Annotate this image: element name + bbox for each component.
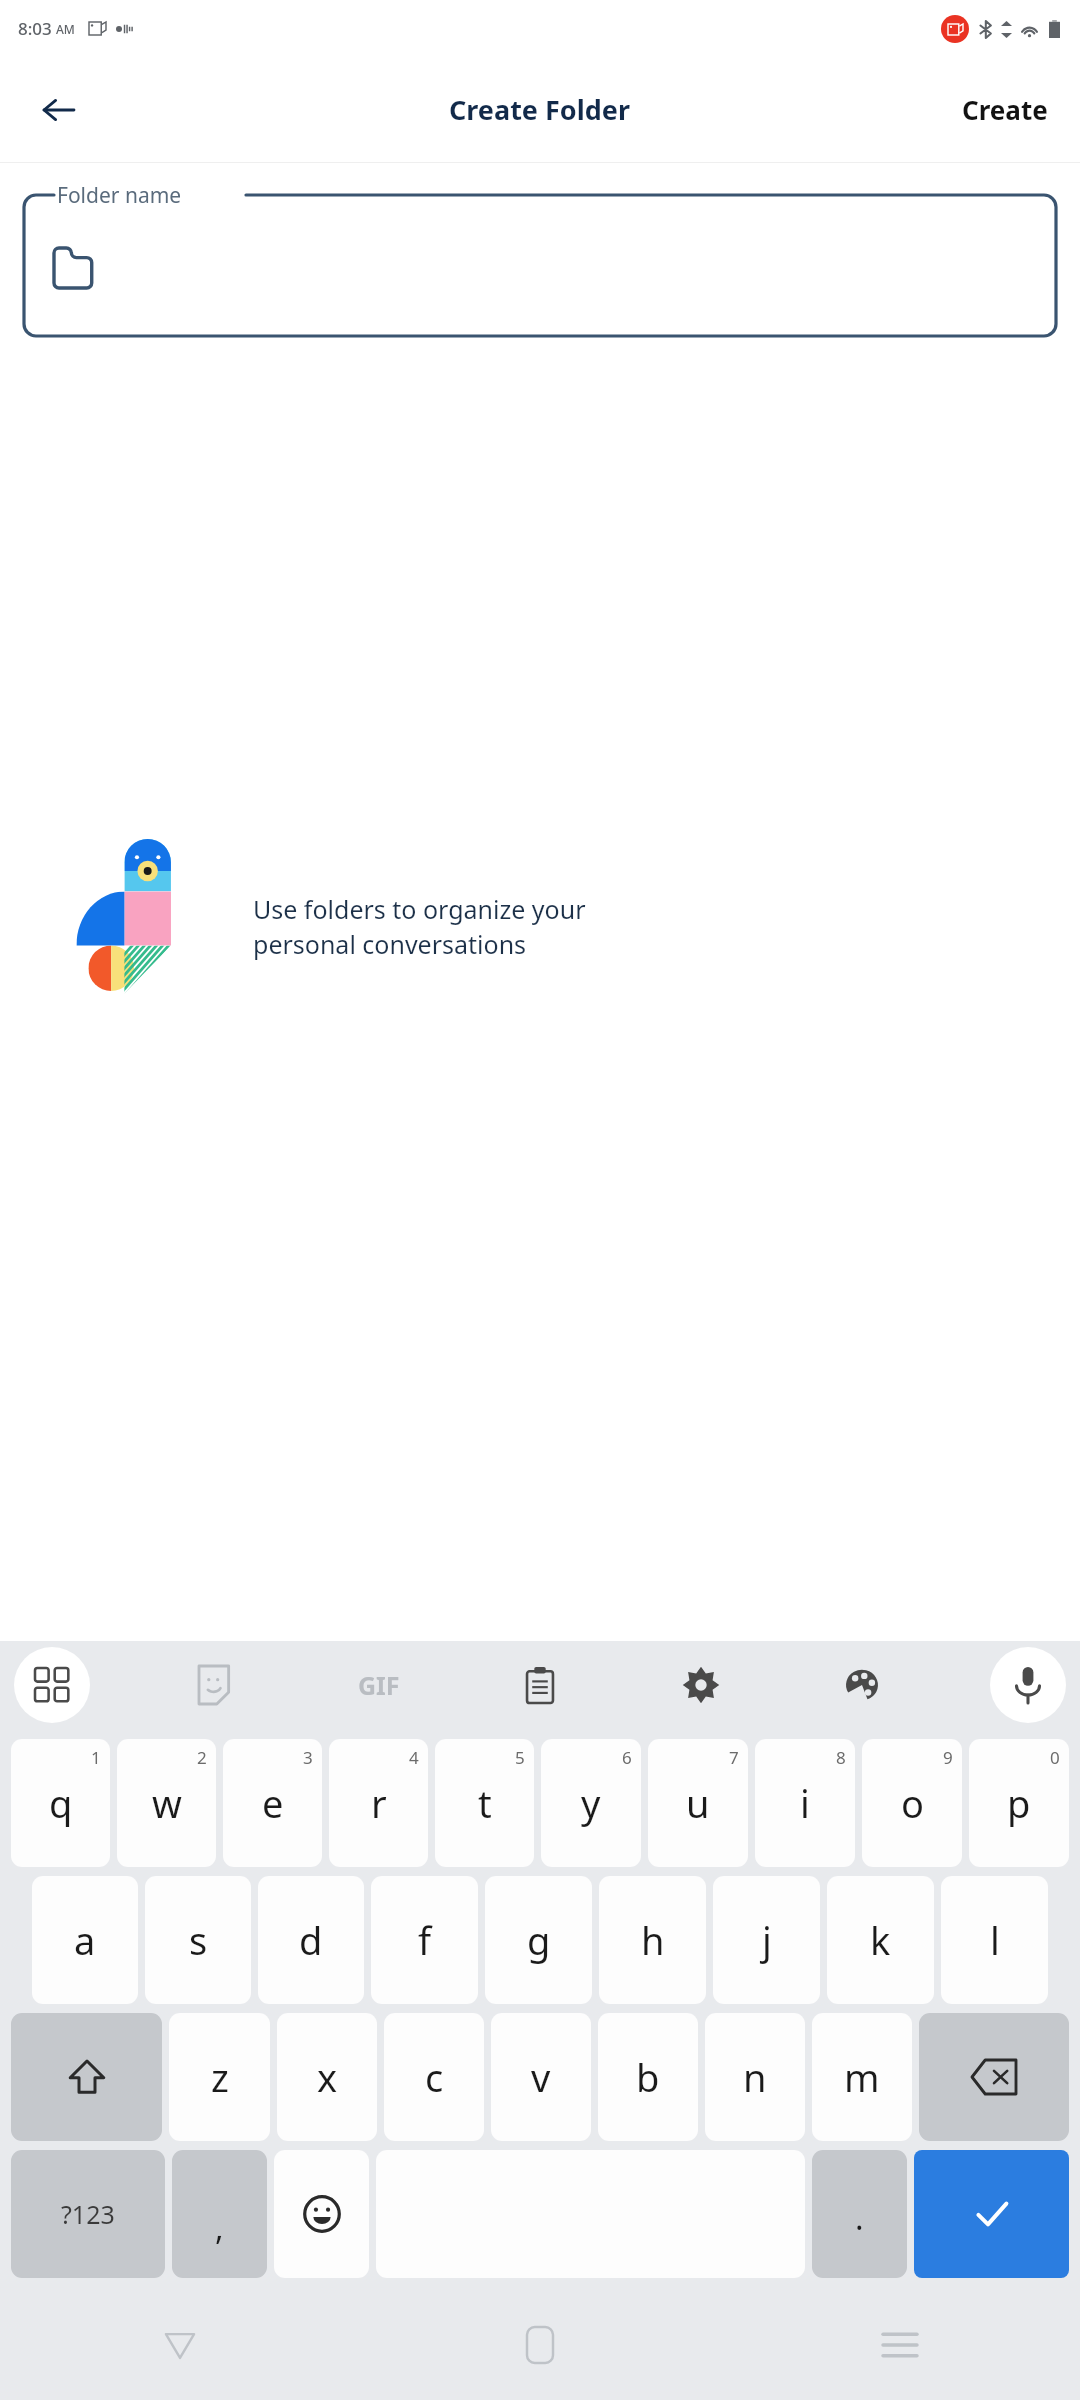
button[interactable]: p [969,1739,1069,1867]
button[interactable]: o [862,1739,962,1867]
staticText: 9 [943,1746,953,1769]
staticText: 6 [622,1746,632,1769]
button[interactable]: v [491,2013,591,2141]
button[interactable]: g [485,1876,592,2004]
staticText: , [215,2206,224,2250]
staticText: d [299,1914,323,1966]
staticText: g [527,1914,551,1966]
staticText: o [901,1777,924,1829]
staticText: Create [962,92,1048,127]
button[interactable]: Recents [720,2290,1080,2400]
button[interactable]: x [277,2013,377,2141]
button[interactable]: d [258,1876,364,2004]
staticText: n [743,2051,767,2103]
staticText: Use folders to organize your personal co… [253,892,586,962]
staticText: 1 [91,1746,101,1769]
staticText: f [418,1914,432,1966]
button[interactable]: h [599,1876,706,2004]
staticText: r [371,1777,387,1829]
button[interactable]: c [384,2013,484,2141]
staticText: 2 [197,1746,207,1769]
staticText: l [990,1914,1000,1966]
button[interactable]: Voice input [990,1647,1066,1723]
staticText: a [74,1914,96,1966]
staticText: 3 [303,1746,313,1769]
button[interactable]: n [705,2013,805,2141]
staticText: c [425,2051,444,2103]
button[interactable]: r [329,1739,428,1867]
staticText: b [636,2051,660,2103]
staticText: u [686,1777,710,1829]
staticText: k [870,1914,891,1966]
button[interactable]: ?123 [11,2150,165,2278]
staticText: 5 [515,1746,525,1769]
button[interactable]: b [598,2013,698,2141]
staticText: h [641,1914,665,1966]
button[interactable]: Create [944,80,1066,139]
button[interactable]: l [941,1876,1048,2004]
staticText: 4 [409,1746,419,1769]
button[interactable]: a [32,1876,138,2004]
staticText: Folder name [57,181,182,210]
button[interactable]: , [172,2150,267,2278]
button[interactable]: Done [914,2150,1069,2278]
staticText: q [49,1777,73,1829]
button[interactable]: Shift [11,2013,162,2141]
button[interactable]: Backspace [919,2013,1069,2141]
staticText: Create Folder [449,91,631,128]
button[interactable]: m [812,2013,912,2141]
button[interactable]: t [435,1739,534,1867]
staticText: z [211,2051,229,2103]
button[interactable]: z [169,2013,270,2141]
button[interactable]: k [827,1876,934,2004]
staticText: 0 [1050,1746,1060,1769]
button[interactable]: s [145,1876,251,2004]
staticText: j [762,1914,772,1966]
button[interactable]: y [541,1739,641,1867]
staticText: ?123 [61,2197,115,2231]
button[interactable]: j [713,1876,820,2004]
staticText: 8:03 [18,17,52,40]
button[interactable]: Back [28,79,90,141]
staticText: x [317,2051,338,2103]
staticText: t [478,1777,492,1829]
staticText: 7 [729,1746,739,1769]
staticText: w [152,1777,182,1829]
staticText: e [262,1777,284,1829]
button[interactable]: i [755,1739,855,1867]
button[interactable]: GIF [346,1652,412,1718]
button[interactable]: Themes [829,1652,895,1718]
button[interactable]: Stickers [185,1652,251,1718]
button[interactable]: Settings [668,1652,734,1718]
staticText: p [1007,1777,1031,1829]
button[interactable]: q [11,1739,110,1867]
button[interactable]: Clipboard [507,1652,573,1718]
button[interactable]: . [812,2150,907,2278]
button[interactable]: Keyboard menu [14,1647,90,1723]
staticText: 8 [836,1746,846,1769]
button[interactable]: e [223,1739,322,1867]
staticText: i [800,1777,810,1829]
button[interactable]: w [117,1739,216,1867]
button[interactable]: f [371,1876,478,2004]
button[interactable]: u [648,1739,748,1867]
staticText: . [855,2196,864,2240]
staticText: s [189,1914,208,1966]
button[interactable]: Home [360,2290,720,2400]
button[interactable]: Emoji [274,2150,369,2278]
staticText: AM [56,21,75,37]
staticText: m [844,2051,880,2103]
staticText: v [531,2051,551,2103]
staticText: y [581,1777,601,1829]
staticText: GIF [358,1668,400,1702]
